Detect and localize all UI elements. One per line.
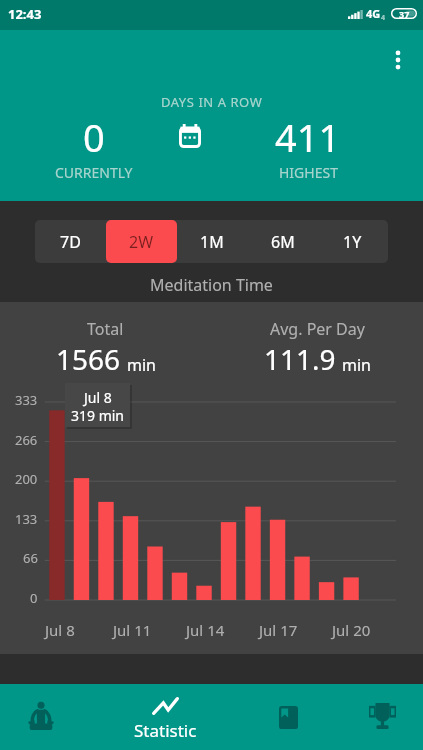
staticText: Jul 14 — [186, 620, 225, 640]
button[interactable]: 1Y — [317, 220, 388, 263]
staticText: Avg. Per Day — [270, 318, 365, 340]
staticText: 4 — [381, 13, 386, 23]
staticText: 0 — [30, 589, 38, 607]
staticText: 333 — [15, 391, 38, 409]
staticText: Jul 8 — [84, 388, 112, 407]
staticText: 12:43 — [8, 5, 42, 23]
staticText: Total — [87, 318, 124, 340]
button[interactable]: 7D — [35, 220, 106, 263]
staticText: 133 — [15, 510, 38, 528]
staticText: Jul 8 — [45, 620, 75, 640]
staticText: Jul 11 — [113, 620, 152, 640]
staticText: 319 min — [71, 406, 125, 425]
button[interactable]: 2W — [106, 220, 177, 263]
staticText: 1566 — [56, 340, 121, 378]
staticText: 0 — [83, 111, 105, 163]
button[interactable]: Statistic — [82, 684, 248, 750]
staticText: 411 — [275, 111, 341, 163]
button[interactable]: Achievements — [342, 684, 422, 750]
staticText: Jul 20 — [332, 620, 371, 640]
staticText: 66 — [23, 549, 38, 567]
button[interactable]: 1M — [176, 220, 247, 263]
staticText: Jul 17 — [259, 620, 298, 640]
staticText: 111.9 — [264, 340, 336, 378]
staticText: 6M — [271, 231, 295, 253]
button[interactable]: 6M — [247, 220, 318, 263]
staticText: HIGHEST — [279, 163, 338, 182]
staticText: 266 — [15, 431, 38, 449]
staticText: min — [127, 354, 156, 376]
staticText: min — [342, 354, 371, 376]
staticText: 1M — [200, 231, 224, 253]
staticText: DAYS IN A ROW — [161, 93, 263, 111]
staticText: 200 — [15, 470, 38, 488]
button[interactable]: Library — [248, 684, 328, 750]
button[interactable]: Meditate — [0, 684, 82, 750]
staticText: Statistic — [134, 719, 197, 742]
staticText: Meditation Time — [150, 274, 273, 296]
staticText: 4G — [366, 6, 381, 21]
staticText: 2W — [129, 231, 154, 253]
button[interactable]: More options — [376, 38, 420, 82]
staticText: 37 — [399, 8, 410, 19]
staticText: CURRENTLY — [55, 163, 133, 182]
staticText: 1Y — [343, 231, 362, 253]
staticText: 7D — [60, 231, 81, 253]
